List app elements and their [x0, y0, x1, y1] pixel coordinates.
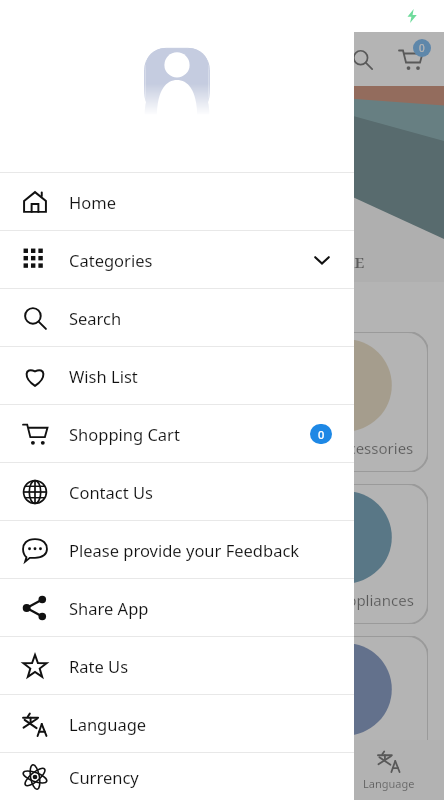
button[interactable]: Please provide your Feedback	[0, 521, 354, 578]
button[interactable]: Bicycle	[16, 636, 428, 776]
button[interactable]: Shopping Cart	[0, 405, 354, 462]
staticText: Currency	[69, 766, 139, 788]
staticText: Wish List	[69, 365, 138, 387]
staticText: Contact Us	[69, 481, 153, 503]
button[interactable]: Language	[0, 695, 354, 752]
staticText: Bicycle	[365, 742, 414, 762]
button[interactable]: Search	[0, 289, 354, 346]
button[interactable]: Rate Us	[0, 637, 354, 694]
button[interactable]: Share App	[0, 579, 354, 636]
staticText: Rate Us	[69, 655, 129, 677]
staticText: Home Appliances	[291, 590, 414, 610]
button[interactable]: Home	[0, 173, 354, 230]
staticText: Please provide your Feedback	[69, 539, 300, 561]
button[interactable]: Search	[342, 39, 382, 79]
staticText: 0	[419, 41, 425, 55]
button[interactable]: Home Appliances	[16, 484, 428, 624]
button[interactable]: Cart	[388, 37, 432, 81]
button[interactable]: Language	[0, 740, 111, 800]
button[interactable]: Language	[333, 740, 444, 800]
staticText: Shopping Cart	[69, 423, 180, 445]
staticText: Share App	[69, 597, 149, 619]
button[interactable]: Language	[111, 740, 222, 800]
staticText: Kitchen Accessories	[275, 438, 414, 458]
button[interactable]: Categories	[0, 231, 354, 288]
button[interactable]: Kitchen Accessories	[16, 332, 428, 472]
staticText: Language	[69, 713, 147, 735]
staticText: 0	[318, 427, 325, 442]
staticText: BICYCLE & MUCH MORE	[250, 232, 365, 272]
button[interactable]: Contact Us	[0, 463, 354, 520]
button[interactable]	[0, 0, 444, 800]
staticText: Language	[30, 776, 82, 791]
button[interactable]: Wish List	[0, 347, 354, 404]
staticText: Language	[363, 776, 415, 791]
staticText: Home	[69, 191, 116, 213]
button[interactable]: Currency	[0, 753, 354, 800]
staticText: Categories	[69, 249, 153, 271]
staticText: Search	[69, 307, 122, 329]
